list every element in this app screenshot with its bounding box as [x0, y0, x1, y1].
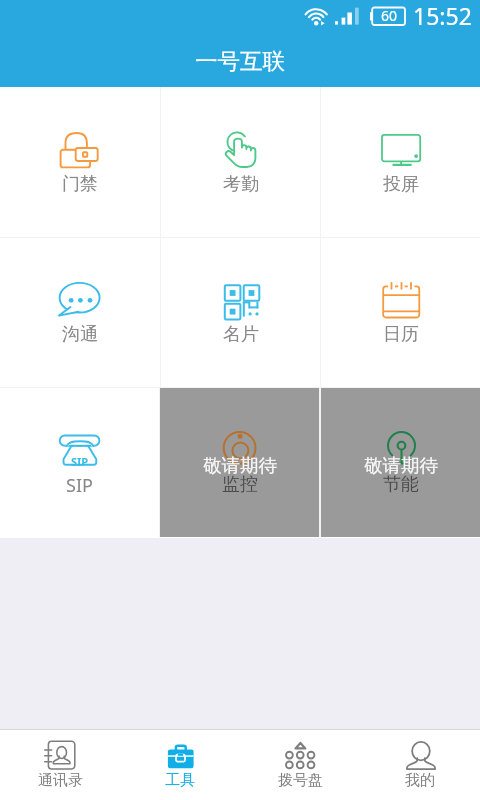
staticText: 投屏 — [383, 173, 419, 196]
staticText: 60 — [381, 6, 398, 25]
staticText: 日历 — [383, 323, 419, 346]
staticText: 拨号盘 — [278, 771, 323, 790]
button[interactable]: 名片 — [161, 238, 320, 387]
staticText: 15:52 — [413, 0, 472, 30]
staticText: 一号互联 — [195, 47, 285, 75]
staticText: 沟通 — [62, 323, 98, 346]
staticText: SIP — [66, 473, 93, 498]
staticText: 我的 — [405, 771, 435, 790]
button[interactable]: 节能 — [321, 388, 480, 537]
button[interactable]: 日历 — [321, 238, 480, 387]
staticText: 敬请期待 — [203, 454, 277, 477]
button[interactable]: Contacts — [0, 730, 120, 800]
button[interactable]: 考勤 — [161, 87, 320, 237]
staticText: 考勤 — [223, 173, 259, 196]
button[interactable]: Dialpad — [240, 730, 360, 800]
staticText: 门禁 — [62, 173, 98, 196]
staticText: 节能 — [383, 473, 419, 496]
staticText: 监控 — [222, 473, 258, 496]
staticText: SIP — [71, 454, 89, 469]
button[interactable]: 门禁 — [0, 87, 160, 237]
button[interactable]: Tools — [120, 730, 240, 800]
staticText: 名片 — [223, 323, 259, 346]
staticText: 敬请期待 — [364, 454, 438, 477]
button[interactable]: SIP — [0, 388, 159, 537]
staticText: 通讯录 — [38, 771, 83, 790]
button[interactable]: Profile — [360, 730, 480, 800]
button[interactable]: 沟通 — [0, 238, 160, 387]
button[interactable]: 投屏 — [321, 87, 480, 237]
button[interactable]: 监控 — [160, 388, 319, 537]
staticText: 工具 — [165, 771, 195, 790]
